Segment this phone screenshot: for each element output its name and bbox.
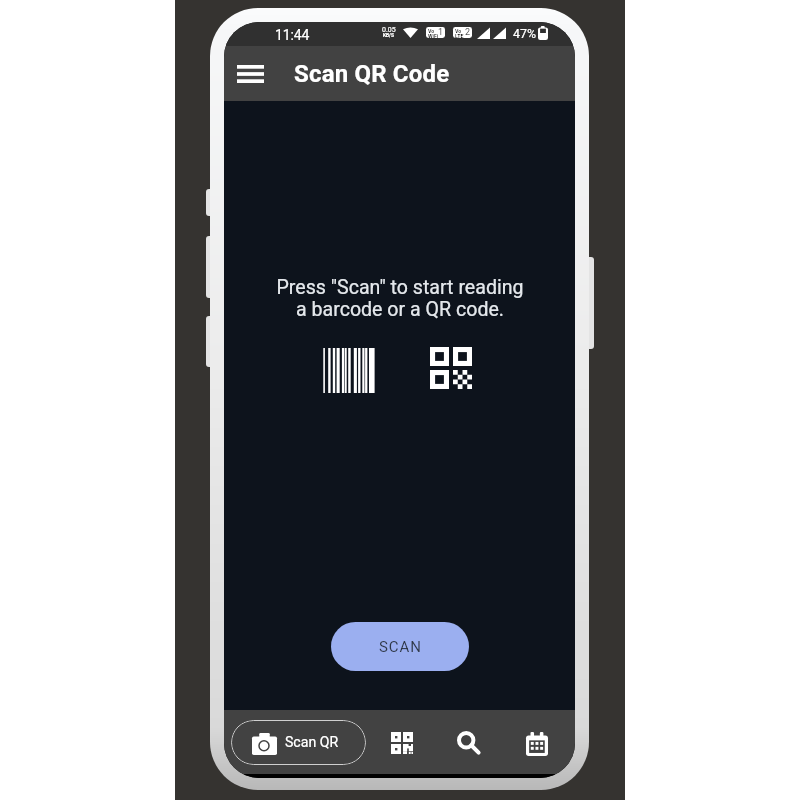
staticText: 0.05 [382, 26, 396, 34]
staticText: 1 [438, 27, 444, 38]
staticText: LTE [455, 33, 464, 39]
button[interactable]: Menu [231, 55, 269, 93]
staticText: Press "Scan" to start reading a barcode … [276, 276, 524, 321]
staticText: KB/S [383, 33, 394, 39]
staticText: Vo [428, 28, 435, 34]
button[interactable]: QR codes [380, 720, 424, 764]
button[interactable]: Search [447, 720, 491, 764]
staticText: Vo [455, 28, 462, 34]
staticText: Scan QR Code [294, 60, 450, 88]
staticText: 2 [465, 27, 471, 38]
button[interactable]: Scan QR [231, 720, 366, 765]
button[interactable]: History [515, 720, 559, 764]
button[interactable]: SCAN [331, 622, 469, 671]
staticText: 11:44 [275, 27, 310, 43]
staticText: WiFi [428, 33, 439, 39]
staticText: SCAN [379, 638, 422, 656]
staticText: Scan QR [285, 734, 339, 751]
staticText: 47% [513, 26, 537, 41]
